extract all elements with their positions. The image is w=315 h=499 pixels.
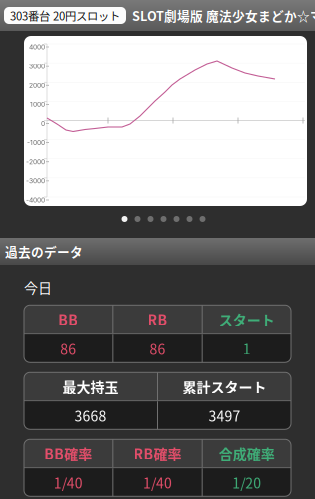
staticText: 86 <box>149 338 165 358</box>
staticText: 累計スタート <box>182 376 266 396</box>
staticText: RB確率 <box>133 443 181 463</box>
staticText: 1 <box>243 338 251 358</box>
staticText: -1000 <box>27 139 45 147</box>
staticText: 1/20 <box>232 472 261 492</box>
staticText: 1/40 <box>54 472 83 492</box>
staticText: 1/40 <box>143 472 172 492</box>
button[interactable]: 303番台 20円スロット <box>4 7 126 24</box>
staticText: -3000 <box>26 177 45 185</box>
staticText: 4000 <box>29 43 45 51</box>
staticText: 合成確率 <box>219 443 275 463</box>
staticText: 3668 <box>74 405 106 425</box>
staticText: 2000 <box>29 81 45 89</box>
staticText: 86 <box>60 338 76 358</box>
staticText: スタート <box>219 309 275 329</box>
staticText: BB <box>58 309 78 329</box>
staticText: 過去のデータ <box>5 242 83 261</box>
staticText: -4000 <box>26 196 45 204</box>
staticText: 今日 <box>24 277 52 297</box>
staticText: 3497 <box>208 405 240 425</box>
staticText: RB <box>147 309 167 329</box>
staticText: BB確率 <box>44 443 92 463</box>
staticText: 最大持玉 <box>62 376 118 396</box>
staticText: SLOT劇場版 魔法少女まどか☆マギカ[前編] <box>132 6 315 25</box>
staticText: 303番台 20円スロット <box>10 7 120 24</box>
staticText: 3000 <box>29 62 45 70</box>
staticText: 0 <box>41 119 45 128</box>
staticText: -2000 <box>26 158 45 166</box>
staticText: 1000 <box>30 100 45 108</box>
